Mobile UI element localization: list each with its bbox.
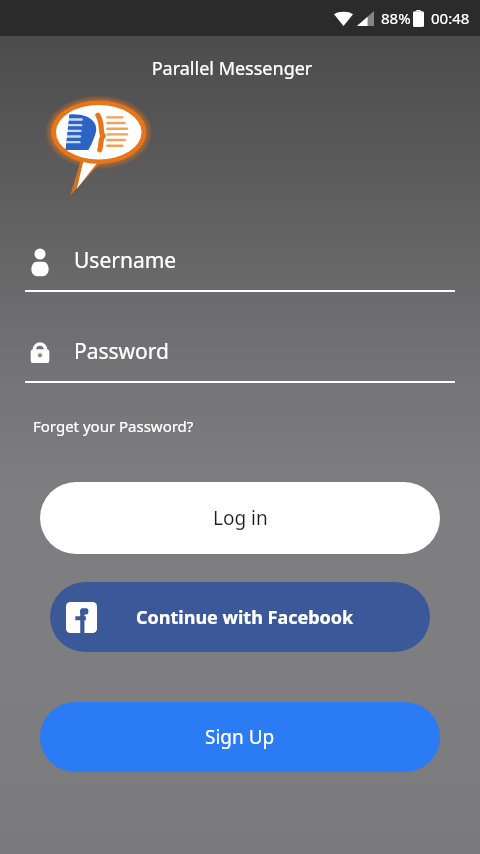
button[interactable]: Continue with Facebook	[50, 582, 430, 652]
staticText: Parallel Messenger	[88, 56, 376, 81]
button[interactable]: Forget your Password?	[25, 412, 202, 440]
other: Username	[25, 245, 55, 275]
staticText: Sign Up	[205, 724, 275, 750]
button[interactable]: Sign Up	[40, 702, 440, 772]
staticText: 88%	[381, 8, 411, 28]
staticText: 00:48	[431, 8, 470, 28]
other: Password	[25, 336, 55, 366]
other: Parallel Messenger logo	[48, 90, 156, 186]
button[interactable]: Log in	[40, 482, 440, 554]
button[interactable]: Password	[0, 336, 480, 383]
staticText: Continue with Facebook	[136, 605, 354, 630]
button[interactable]: Username	[0, 245, 480, 292]
staticText: Forget your Password?	[33, 416, 194, 436]
staticText: Username	[74, 246, 177, 275]
staticText: Log in	[213, 505, 268, 531]
staticText: Password	[74, 337, 169, 366]
